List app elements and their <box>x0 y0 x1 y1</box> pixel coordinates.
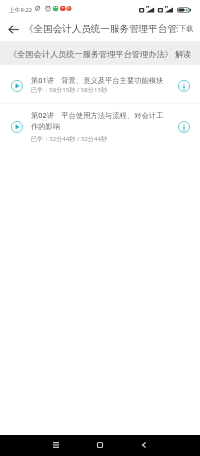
staticText: 已学：32分44秒 / 32分44秒 <box>31 134 107 142</box>
staticText: 《全国会计人员统一服务管理平台管理办法》 解读 <box>9 48 192 59</box>
staticText: 第02讲 平台使用方法与流程、对会计工作的影响 <box>31 110 167 131</box>
button[interactable]: 返回 <box>2 18 24 40</box>
button[interactable]: 返回 <box>134 434 154 455</box>
staticText: 《全国会计人员统一服务管理平台管理办法》解读 <box>24 23 178 35</box>
button[interactable]: 播放 <box>0 65 200 103</box>
button[interactable]: 主页 <box>90 434 110 455</box>
staticText: 已学：58分15秒 / 58分15秒 <box>31 85 107 93</box>
button[interactable]: 播放 <box>0 104 200 150</box>
button[interactable]: 播放 <box>9 78 25 94</box>
staticText: 第01讲 背景、意义及平台主要功能模块 <box>31 75 164 85</box>
staticText: 上午9:22 <box>9 6 33 14</box>
button[interactable]: 播放 <box>9 119 25 135</box>
button[interactable]: 下载 <box>176 119 192 135</box>
button[interactable]: 下载 <box>176 78 192 94</box>
button[interactable]: 最近任务 <box>46 434 66 455</box>
staticText: 下载 <box>179 24 194 33</box>
button[interactable]: 下载 <box>173 20 200 37</box>
